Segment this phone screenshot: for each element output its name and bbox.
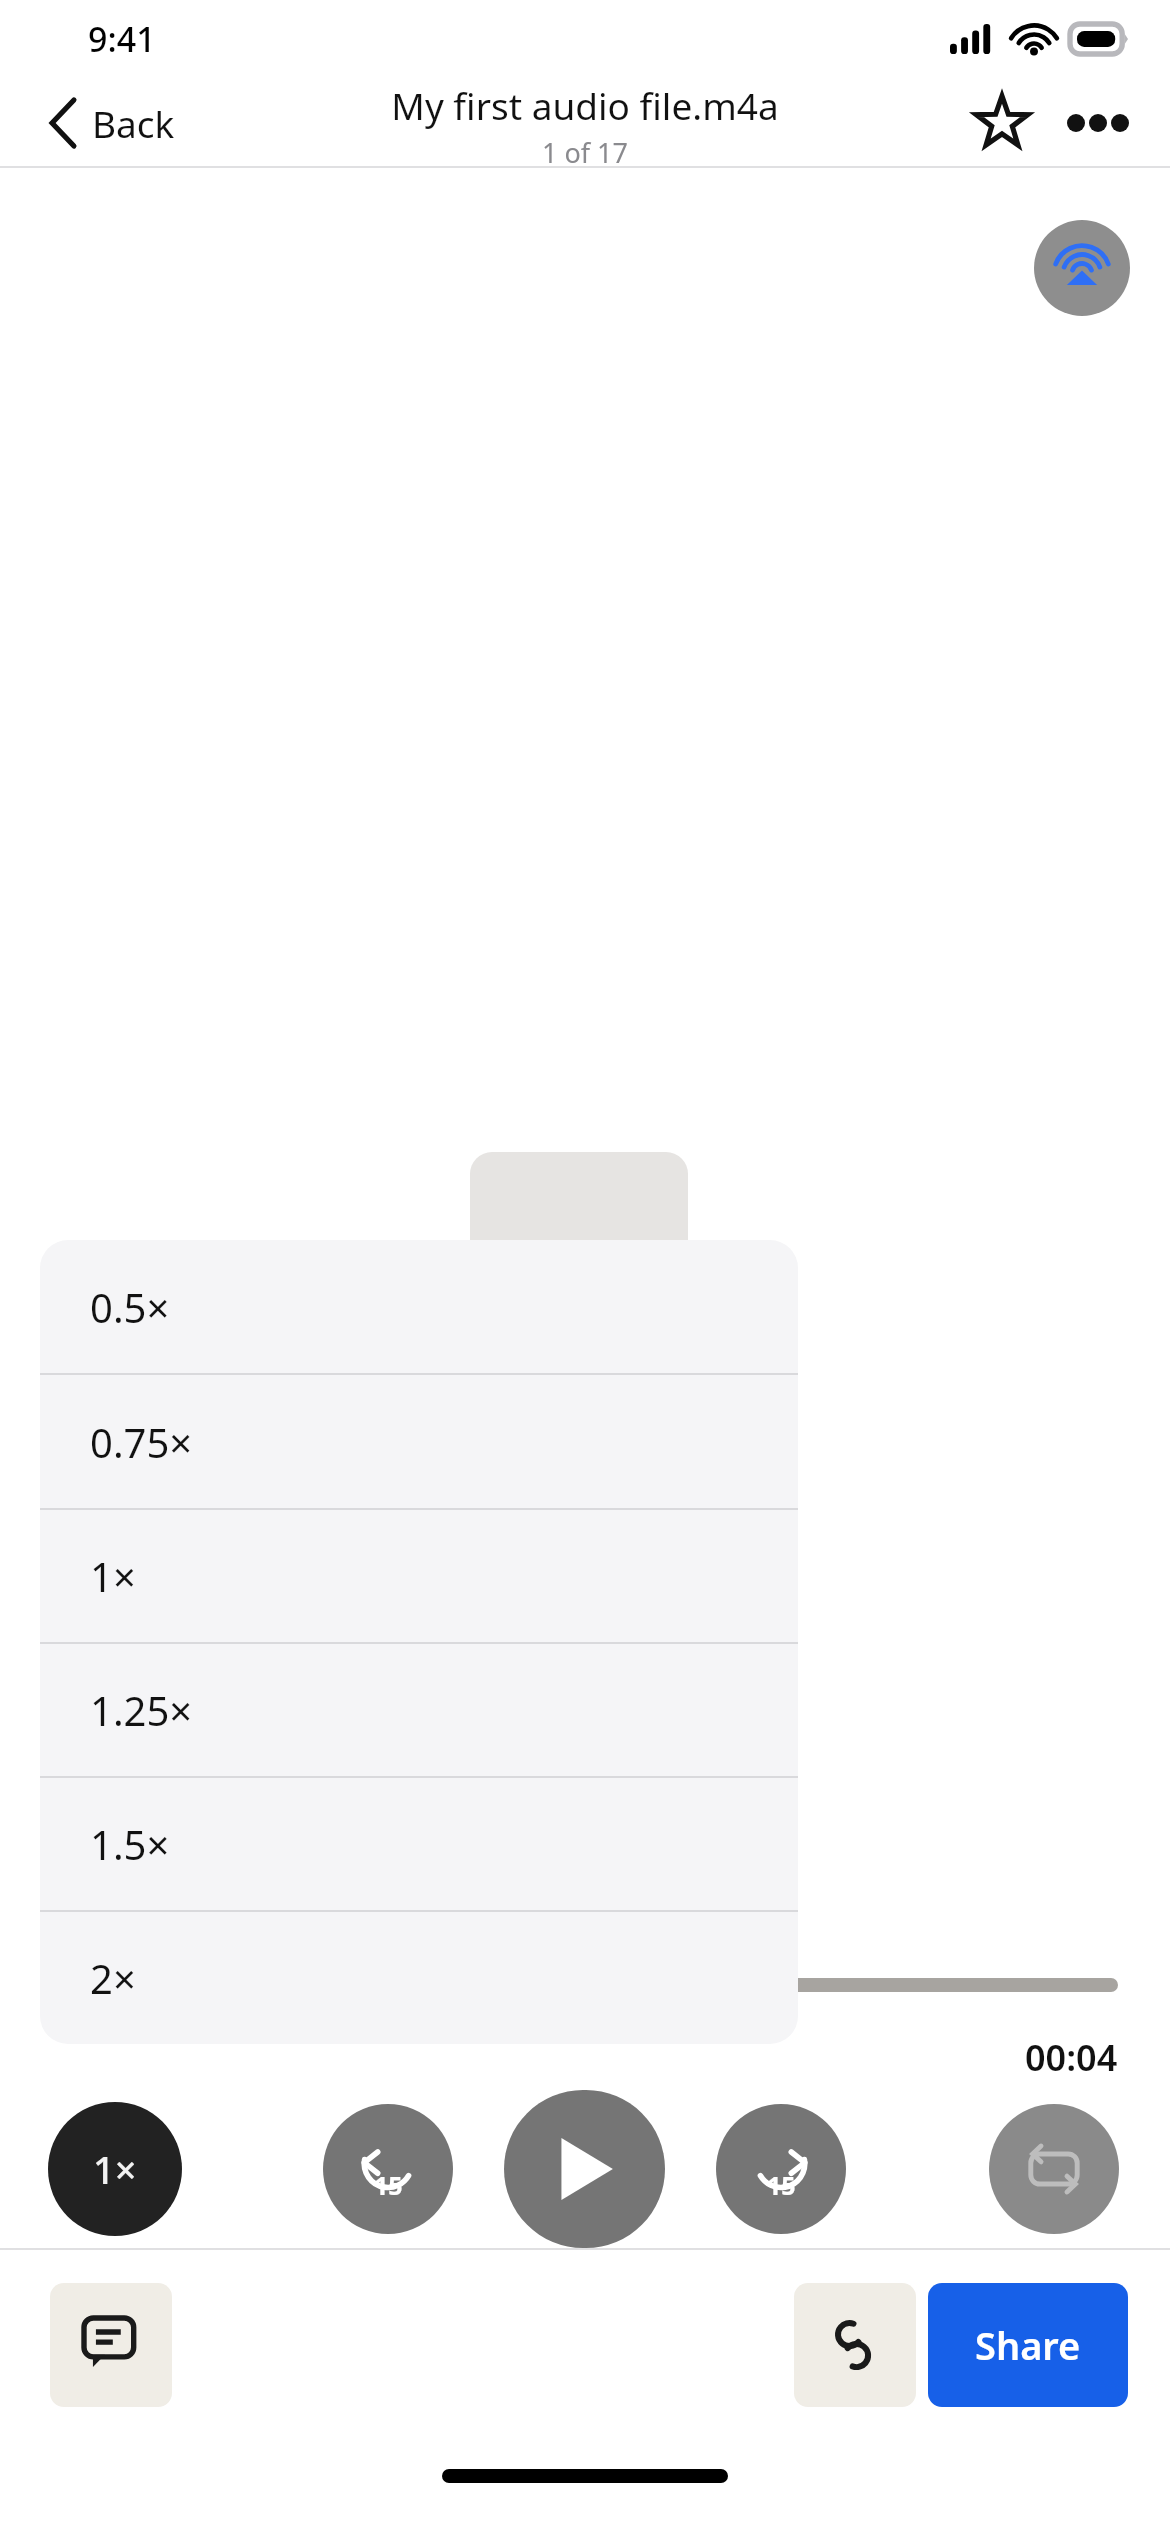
staticText: 1 of 17 <box>542 134 628 170</box>
button[interactable]: Forward 15 seconds <box>716 2104 846 2234</box>
button[interactable]: Audio output <box>1034 220 1130 316</box>
staticText: My first audio file.m4a <box>391 80 779 130</box>
staticText: 1.5× <box>90 1817 170 1871</box>
staticText: 15 <box>767 2168 796 2202</box>
staticText: 1× <box>93 2143 137 2195</box>
staticText: 15 <box>374 2168 403 2202</box>
button[interactable]: More options <box>1050 78 1146 168</box>
button[interactable]: 0.75× <box>40 1375 798 1508</box>
staticText: Back <box>92 98 175 148</box>
button[interactable]: Comments <box>50 2283 172 2407</box>
staticText: 2× <box>90 1951 136 2005</box>
staticText: 0.75× <box>90 1415 193 1469</box>
button[interactable]: 0.5× <box>40 1240 798 1373</box>
staticText: 1.25× <box>90 1683 193 1737</box>
button[interactable]: 1× <box>40 1510 798 1642</box>
button[interactable]: Favorite <box>954 78 1050 168</box>
button[interactable]: 1.5× <box>40 1778 798 1910</box>
button[interactable]: Repeat <box>989 2104 1119 2234</box>
button[interactable]: Play <box>504 2090 665 2248</box>
staticText: 9:41 <box>88 16 156 62</box>
staticText: 0.5× <box>90 1280 170 1334</box>
staticText: Share <box>975 2319 1081 2371</box>
button[interactable]: Copy link <box>794 2283 916 2407</box>
staticText: 00:04 <box>1025 2033 1118 2082</box>
button[interactable]: Back 15 seconds <box>323 2104 453 2234</box>
button[interactable]: 1.25× <box>40 1644 798 1776</box>
staticText: 1× <box>90 1549 136 1603</box>
button[interactable]: Back <box>0 98 195 148</box>
button[interactable]: Share <box>928 2283 1128 2407</box>
button[interactable]: 1× <box>48 2102 182 2236</box>
button[interactable]: 2× <box>40 1912 798 2044</box>
